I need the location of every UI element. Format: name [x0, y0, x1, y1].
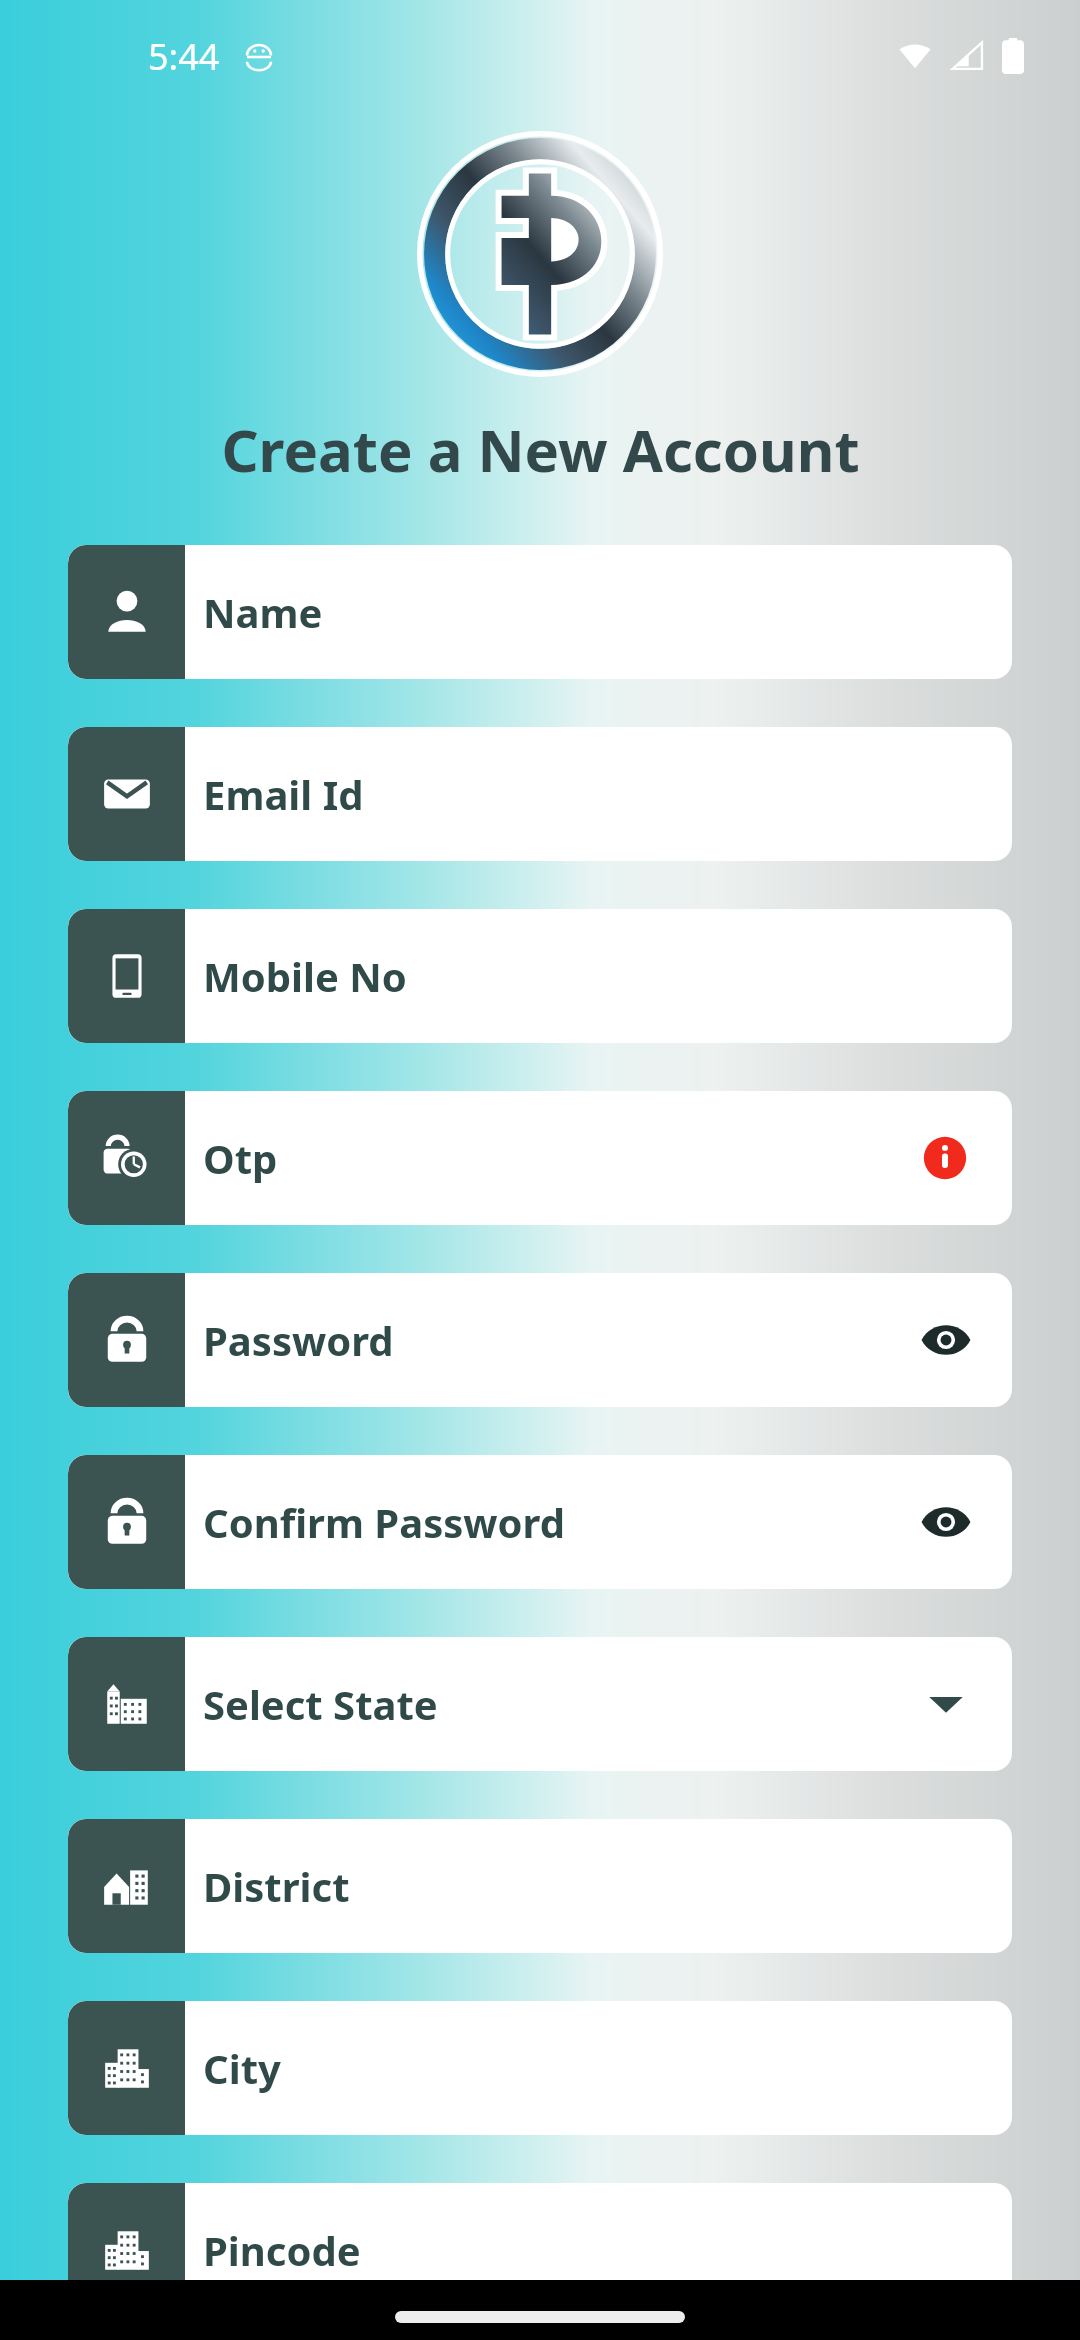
button[interactable]: Toggle password visibility	[920, 1496, 972, 1548]
staticText: Email Id	[203, 767, 972, 821]
button[interactable]: Pincode	[68, 2183, 1012, 2317]
staticText: 5:44	[148, 32, 220, 81]
button[interactable]: Mobile No	[68, 909, 1012, 1043]
staticText: Pincode	[203, 2223, 972, 2277]
button[interactable]: Email Id	[68, 727, 1012, 861]
button[interactable]: Open dropdown	[924, 1682, 968, 1726]
staticText: Select State	[203, 1677, 924, 1731]
button[interactable]: Name	[68, 545, 1012, 679]
button[interactable]: Confirm Password	[68, 1455, 1012, 1589]
staticText: Password	[203, 1313, 920, 1367]
button[interactable]: Toggle password visibility	[920, 1314, 972, 1366]
button[interactable]: Select State	[68, 1637, 1012, 1771]
staticText: City	[203, 2041, 972, 2095]
button[interactable]: City	[68, 2001, 1012, 2135]
staticText: Otp	[203, 1131, 922, 1185]
staticText: Name	[203, 585, 972, 639]
staticText: District	[203, 1859, 972, 1913]
button[interactable]: District	[68, 1819, 1012, 1953]
staticText: Mobile No	[203, 949, 972, 1003]
staticText: Create a New Account	[221, 410, 860, 489]
button[interactable]: Error information	[922, 1135, 968, 1181]
button[interactable]: Otp	[68, 1091, 1012, 1225]
button[interactable]: Password	[68, 1273, 1012, 1407]
staticText: Confirm Password	[203, 1495, 920, 1549]
